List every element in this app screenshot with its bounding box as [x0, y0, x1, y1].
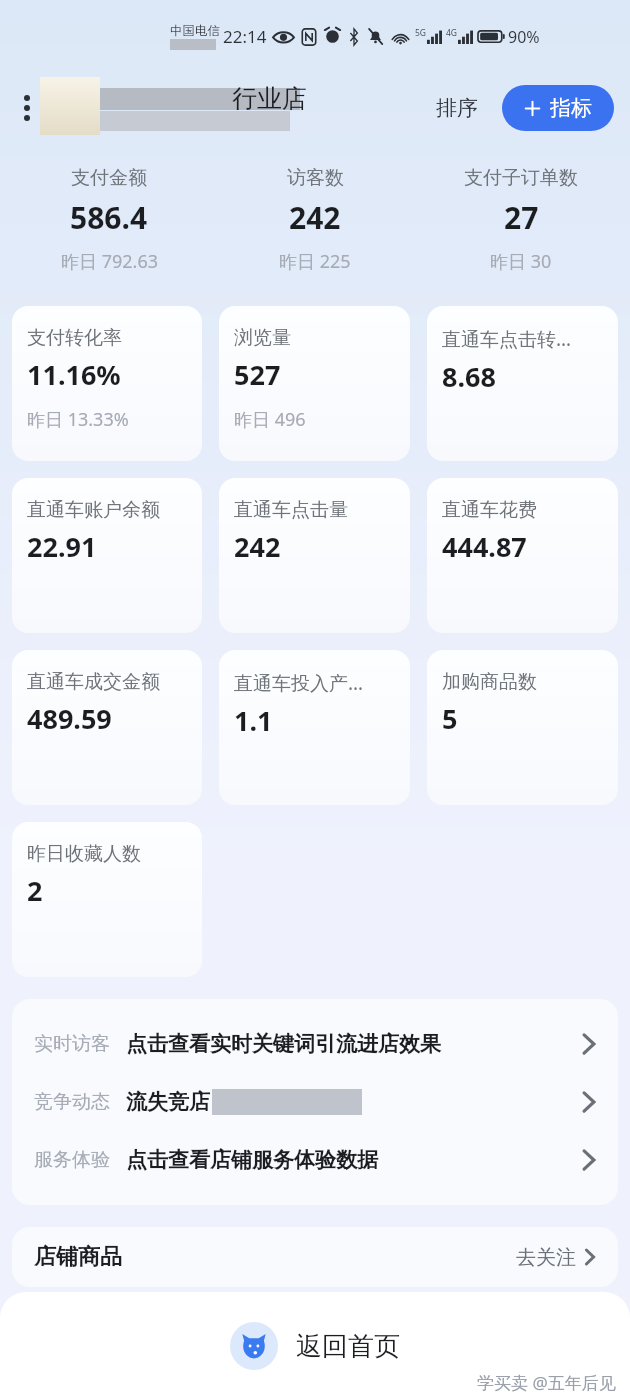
staticText: 昨日 792.63 [61, 249, 158, 274]
staticText: 昨日 13.33% [27, 407, 129, 432]
button[interactable]: 直通车点击量 [219, 478, 410, 633]
other: 服务体验 [582, 1148, 596, 1172]
staticText: 直通车点击转… [442, 326, 572, 352]
staticText: 访客数 [287, 166, 344, 190]
button[interactable]: More options [14, 88, 40, 128]
staticText: 加购商品数 [442, 670, 537, 694]
button[interactable]: 直通车成交金额 [12, 650, 202, 805]
button[interactable]: 昨日收藏人数 [12, 822, 202, 977]
button[interactable]: 支付金额 [6, 166, 212, 274]
staticText: 去关注 [516, 1245, 576, 1270]
staticText: 竞争动态 [34, 1090, 110, 1114]
staticText: 流失竞店 [126, 1089, 210, 1115]
staticText: 8.68 [442, 358, 496, 395]
button[interactable]: 支付转化率 [12, 306, 202, 461]
button[interactable]: 排序 [430, 89, 484, 127]
staticText: 1.1 [234, 702, 273, 739]
staticText: 支付金额 [71, 166, 147, 190]
button[interactable]: 加购商品数 [427, 650, 618, 805]
staticText: 昨日 225 [279, 249, 351, 274]
staticText: 昨日 30 [490, 249, 552, 274]
button[interactable]: 竞争动态 [12, 1073, 618, 1131]
staticText: 242 [234, 528, 281, 565]
staticText: 444.87 [442, 528, 527, 565]
button[interactable]: 直通车投入产… [219, 650, 410, 805]
button[interactable]: 直通车花费 [427, 478, 618, 633]
staticText: 527 [234, 356, 281, 393]
staticText: 22.91 [27, 528, 97, 565]
button[interactable]: 访客数 [212, 166, 418, 274]
staticText: 4G [446, 27, 458, 39]
button[interactable]: 直通车账户余额 [12, 478, 202, 633]
staticText: 直通车投入产… [234, 670, 364, 696]
staticText: 5G [415, 27, 427, 39]
button[interactable]: 浏览量 [219, 306, 410, 461]
staticText: 实时访客 [34, 1032, 110, 1056]
button[interactable]: 服务体验 [12, 1131, 618, 1189]
staticText: 242 [289, 197, 341, 238]
staticText: 5 [442, 700, 458, 737]
staticText: 27 [504, 197, 539, 238]
staticText: 支付转化率 [27, 326, 122, 350]
staticText: 586.4 [70, 197, 148, 238]
staticText: 行业店 [232, 83, 307, 114]
other: 实时访客 [582, 1032, 596, 1056]
button[interactable]: 支付子订单数 [418, 166, 624, 274]
button[interactable]: 指标 [502, 85, 614, 131]
staticText: 返回首页 [296, 1330, 400, 1363]
staticText: 直通车成交金额 [27, 670, 160, 694]
staticText: 直通车点击量 [234, 498, 348, 522]
staticText: 直通车账户余额 [27, 498, 160, 522]
staticText: 浏览量 [234, 326, 291, 350]
staticText: 昨日 496 [234, 407, 306, 432]
staticText: 指标 [550, 95, 592, 121]
staticText: 22:14 [223, 25, 267, 48]
staticText: 11.16% [27, 356, 121, 393]
staticText: 90% [508, 26, 540, 48]
staticText: 直通车花费 [442, 498, 537, 522]
staticText: 中国电信 [170, 23, 220, 39]
staticText: 点击查看实时关键词引流进店效果 [126, 1031, 441, 1057]
other: 竞争动态 [582, 1090, 596, 1114]
button[interactable]: 实时访客 [12, 1015, 618, 1073]
staticText: 店铺商品 [34, 1243, 122, 1271]
staticText: 学买卖 @五年后见 [477, 1371, 616, 1394]
button[interactable]: 直通车点击转… [427, 306, 618, 461]
staticText: 点击查看店铺服务体验数据 [126, 1147, 378, 1173]
staticText: 服务体验 [34, 1148, 110, 1172]
staticText: 支付子订单数 [464, 166, 578, 190]
staticText: 2 [27, 872, 43, 909]
staticText: 昨日收藏人数 [27, 842, 141, 866]
staticText: 排序 [436, 95, 478, 121]
staticText: 489.59 [27, 700, 112, 737]
button[interactable]: 返回首页 [216, 1316, 414, 1376]
